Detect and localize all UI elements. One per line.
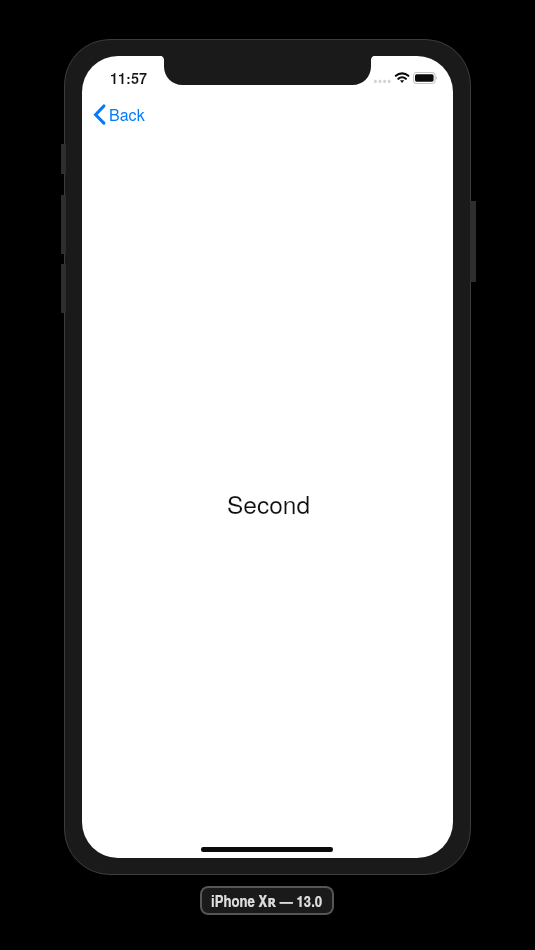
other: Cellular signal <box>374 78 392 86</box>
staticText: Back <box>109 103 145 126</box>
other: Battery full <box>413 72 439 84</box>
button[interactable]: iPhone Xʀ — 13.0 <box>200 886 334 915</box>
other: Wi-Fi <box>394 71 411 85</box>
staticText: iPhone Xʀ — 13.0 <box>211 889 323 912</box>
button[interactable]: Back <box>88 99 151 130</box>
staticText: Second <box>227 486 311 521</box>
staticText: 11:57 <box>110 68 148 89</box>
